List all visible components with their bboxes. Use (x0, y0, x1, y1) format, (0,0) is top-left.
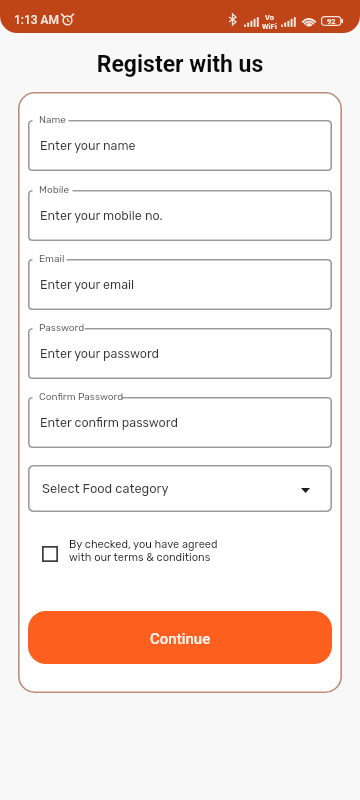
button[interactable]: By checked, you have agreed (28, 541, 332, 567)
staticText: 92 (327, 17, 336, 26)
staticText: Select Food category (42, 481, 169, 496)
button[interactable]: Mobile (28, 190, 332, 241)
button[interactable]: Select Food category (28, 465, 332, 512)
staticText: Register with us (0, 51, 360, 78)
staticText: Enter your password (40, 346, 160, 361)
staticText: Password (39, 322, 85, 334)
other: Open food category list (301, 488, 310, 493)
staticText: Vo (265, 13, 274, 22)
staticText: Email (39, 253, 65, 265)
staticText: Continue (150, 630, 211, 648)
staticText: 1:13 AM (14, 13, 60, 27)
button[interactable]: Email (28, 259, 332, 310)
button[interactable]: Continue (28, 611, 332, 664)
button[interactable]: Confirm Password (28, 397, 332, 448)
staticText: Name (39, 114, 66, 126)
button[interactable]: Name (28, 120, 332, 171)
staticText: WiFi (262, 22, 277, 31)
staticText: with our terms & conditions (69, 551, 211, 564)
staticText: Enter your name (40, 138, 136, 153)
staticText: Enter your email (40, 277, 135, 292)
button[interactable]: Password (28, 328, 332, 379)
staticText: Mobile (39, 184, 70, 196)
staticText: Enter confirm password (40, 415, 178, 430)
staticText: By checked, you have agreed (69, 538, 218, 551)
staticText: Enter your mobile no. (40, 208, 163, 223)
staticText: Confirm Password (39, 391, 124, 403)
